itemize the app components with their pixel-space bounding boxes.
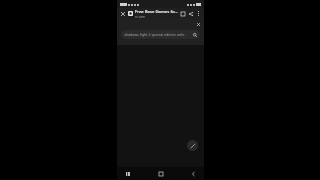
button[interactable]: Compose bbox=[187, 140, 198, 151]
staticText: Free Base Games for ... bbox=[135, 9, 178, 15]
button[interactable]: Back bbox=[189, 169, 198, 178]
button[interactable]: Recent apps bbox=[123, 169, 132, 178]
staticText: ni.com bbox=[135, 15, 146, 19]
button[interactable]: Home bbox=[156, 169, 165, 178]
button[interactable]: shadows fight 2 special edition unlo bbox=[121, 30, 200, 39]
button[interactable]: Dismiss search bbox=[195, 21, 202, 28]
button[interactable]: Share bbox=[187, 10, 195, 18]
button[interactable]: Tabs bbox=[179, 10, 187, 18]
button[interactable]: Close bbox=[119, 10, 127, 18]
staticText: shadows fight 2 special edition unlo bbox=[124, 32, 192, 37]
button[interactable]: More options bbox=[195, 10, 202, 17]
